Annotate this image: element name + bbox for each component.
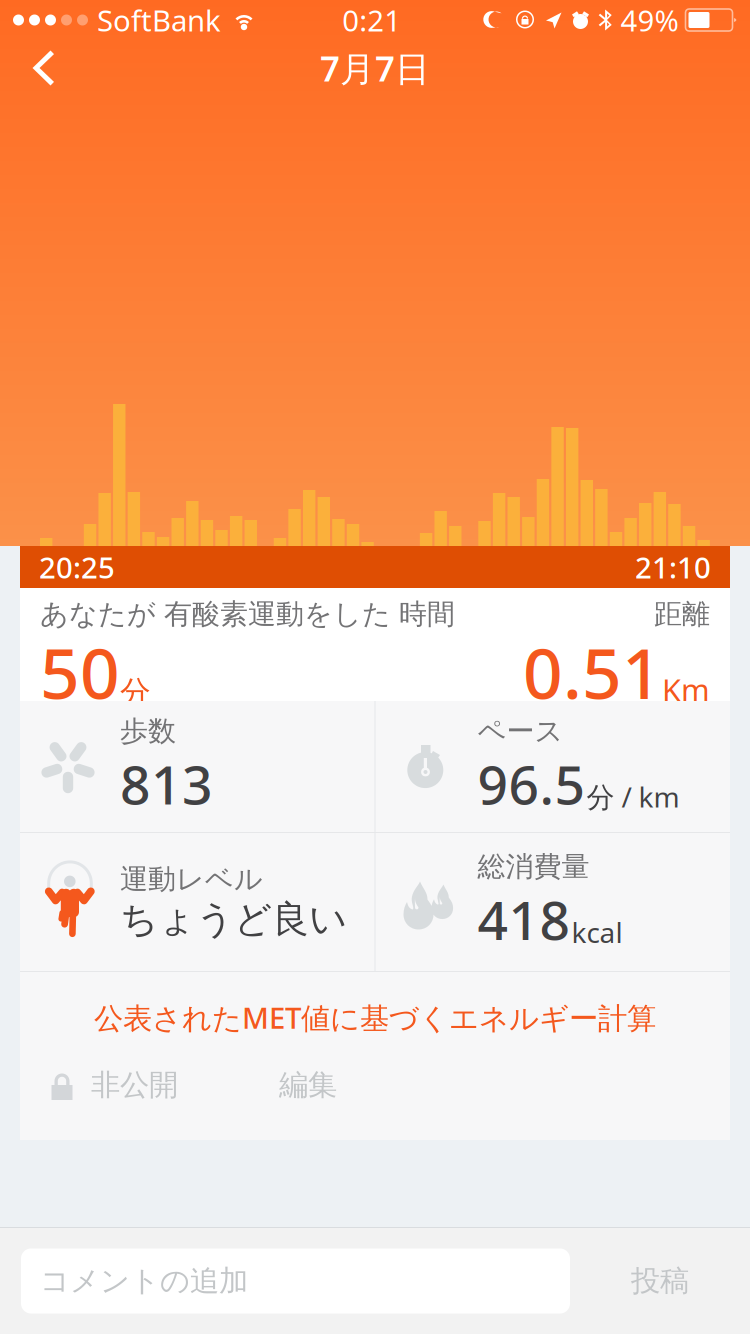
button[interactable]: Back [14, 40, 72, 96]
button[interactable]: 非公開 [49, 1061, 279, 1109]
staticText: 418 [477, 884, 570, 955]
button[interactable]: 公表されたMET値に基づくエネルギー計算 [20, 972, 730, 1061]
staticText: コメントの追加 [40, 1263, 248, 1299]
button[interactable]: 投稿 [570, 1248, 750, 1313]
button[interactable]: 編集 [279, 1061, 379, 1109]
staticText: 距離 [654, 597, 710, 631]
staticText: SoftBank [97, 0, 221, 39]
staticText: ちょうど良い [120, 896, 347, 942]
button[interactable]: コメントの追加 [21, 1248, 570, 1313]
staticText: 21:10 [635, 547, 711, 586]
staticText: 20:25 [39, 547, 115, 586]
staticText: 813 [120, 748, 213, 819]
staticText: 非公開 [91, 1067, 178, 1103]
staticText: 7月7日 [320, 45, 430, 91]
staticText: 歩数 [120, 714, 176, 748]
staticText: 49% [620, 0, 678, 39]
staticText: 総消費量 [477, 849, 589, 884]
staticText: 分 [120, 673, 151, 711]
staticText: 96.5 [477, 748, 585, 819]
staticText: 公表されたMET値に基づくエネルギー計算 [94, 998, 656, 1037]
staticText: あなたが 有酸素運動をした 時間 [40, 597, 455, 631]
staticText: 編集 [279, 1067, 337, 1103]
staticText: 50 [40, 626, 120, 718]
staticText: Km [662, 669, 710, 710]
staticText: 0.51 [523, 626, 662, 718]
staticText: 運動レベル [120, 862, 263, 896]
staticText: 0:21 [342, 0, 401, 39]
staticText: kcal [571, 913, 622, 951]
staticText: ペース [477, 714, 563, 748]
staticText: 投稿 [631, 1263, 689, 1299]
staticText: 分 / km [586, 778, 679, 815]
